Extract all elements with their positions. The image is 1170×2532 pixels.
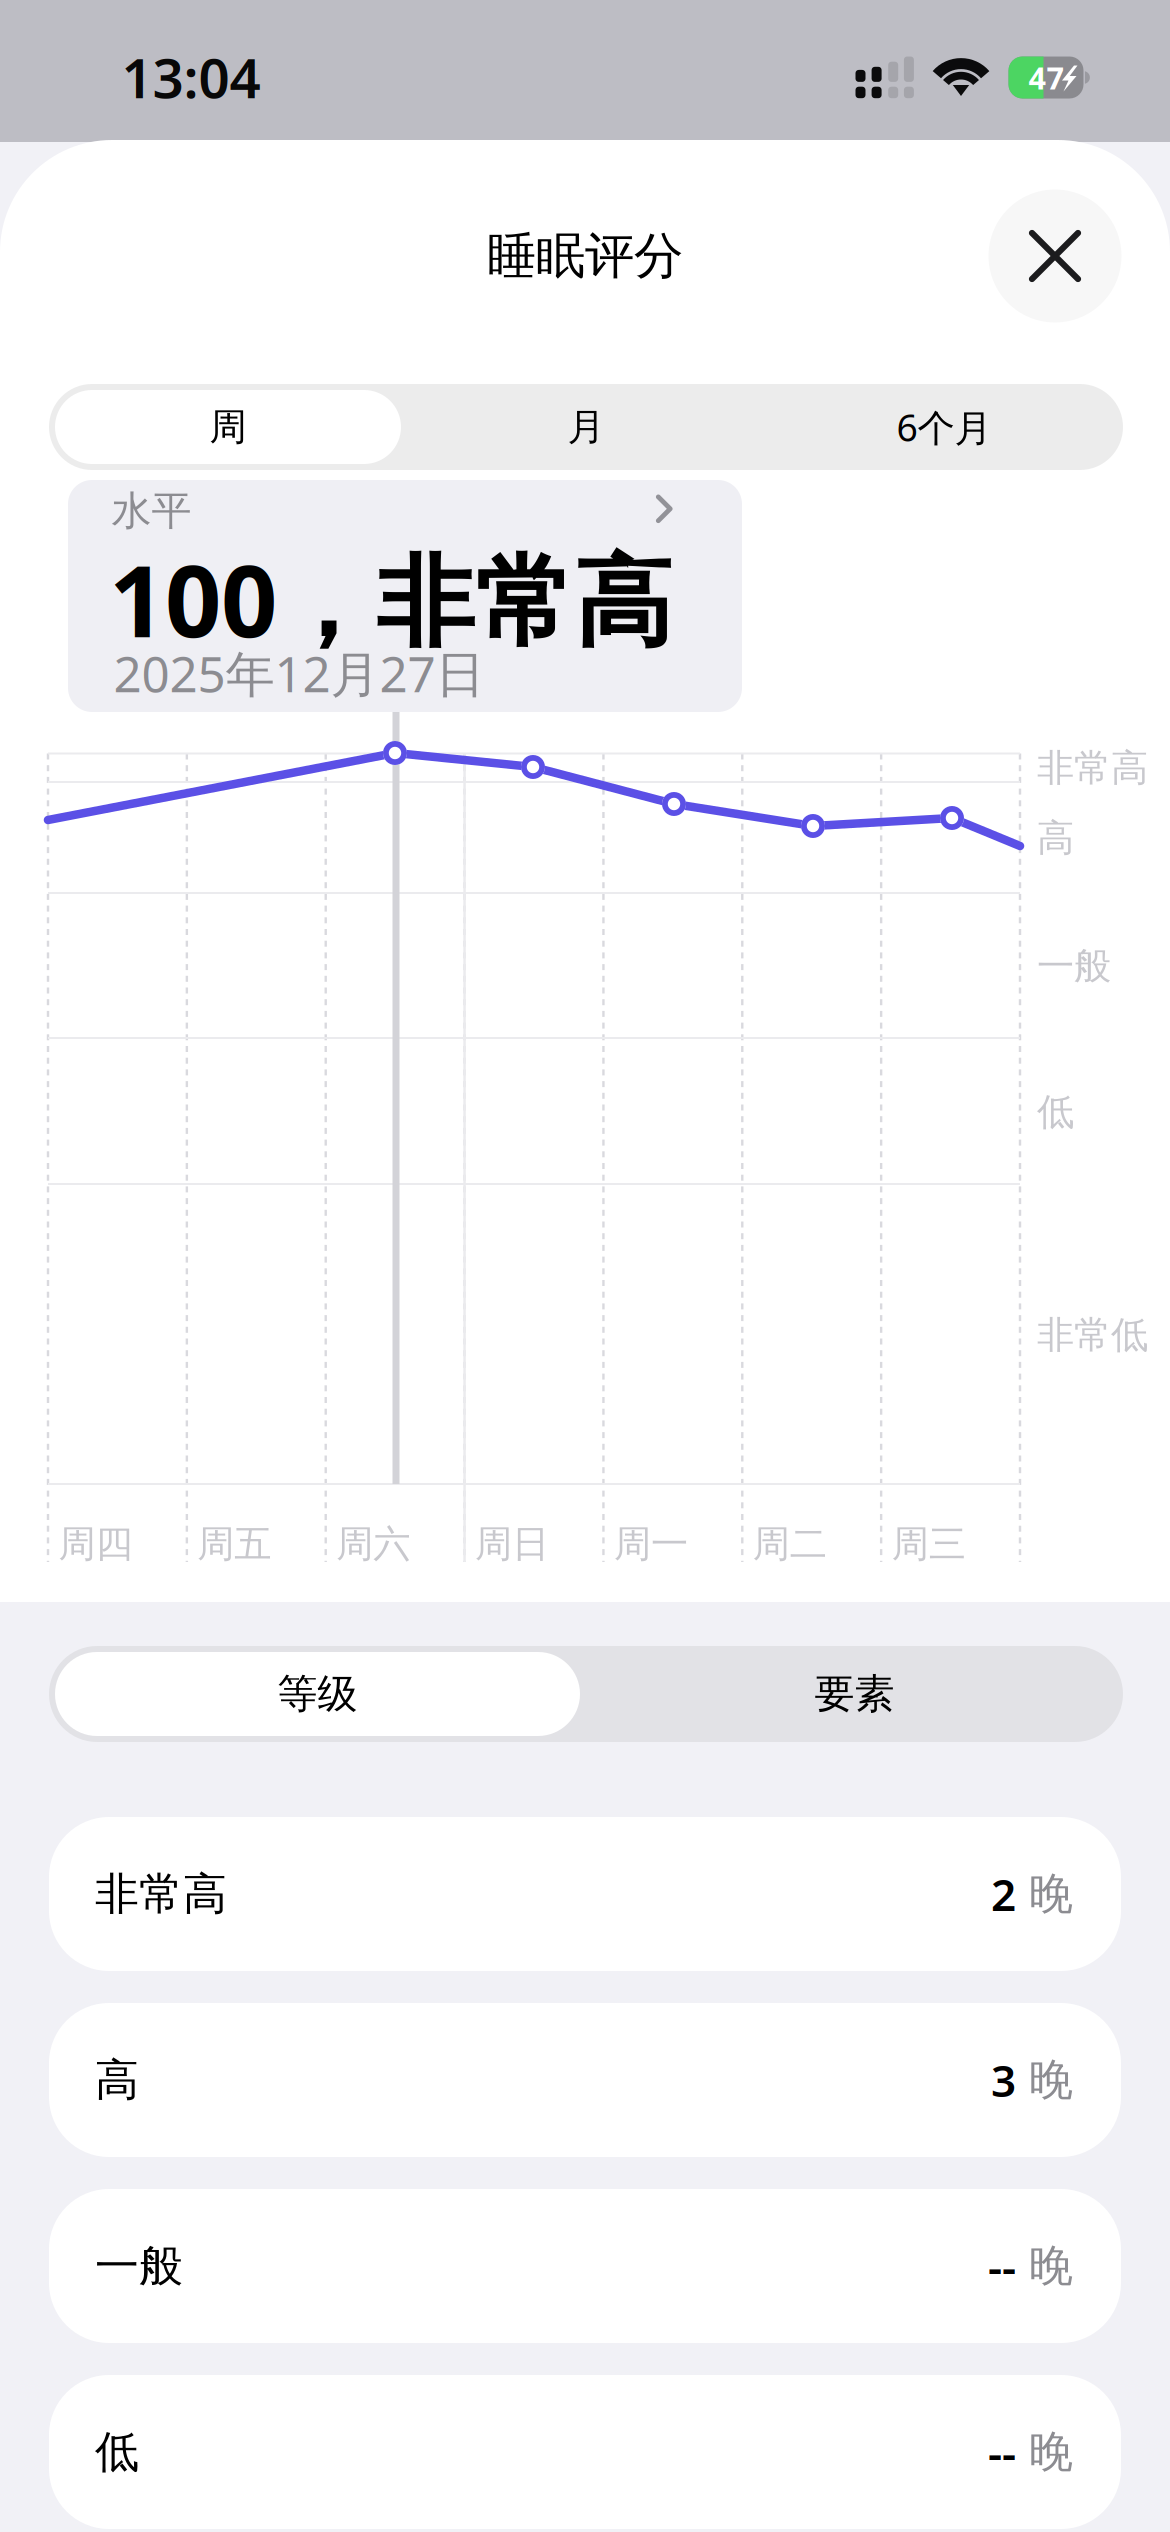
button[interactable]: 关闭 (988, 189, 1121, 322)
button[interactable]: 要素 (586, 1646, 1123, 1742)
staticText: 周四 (58, 1521, 132, 1567)
staticText: 要素 (814, 1669, 894, 1718)
staticText: 周六 (336, 1521, 410, 1567)
staticText: 2 (991, 1865, 1016, 1923)
staticText: 睡眠评分 (487, 226, 683, 286)
staticText: 周二 (753, 1521, 827, 1567)
staticText: 等级 (277, 1669, 357, 1718)
staticText: 6个月 (896, 402, 991, 452)
staticText: 周日 (475, 1521, 549, 1567)
staticText: 高 (95, 2053, 139, 2107)
staticText: 非常低 (1037, 1312, 1148, 1358)
staticText: 2025年12月27日 (113, 640, 484, 706)
button[interactable]: 月 (407, 384, 765, 470)
staticText: 周一 (614, 1521, 688, 1567)
staticText: 晚 (1016, 2425, 1073, 2479)
staticText: 低 (95, 2425, 139, 2479)
staticText: 一般 (1037, 943, 1111, 989)
button[interactable]: 高 (49, 2003, 1121, 2157)
staticText: 晚 (1016, 2239, 1073, 2293)
staticText: 100，非常高 (109, 533, 673, 664)
staticText: 水平 (111, 486, 191, 535)
staticText: -- (988, 2237, 1016, 2295)
staticText: 3 (991, 2051, 1016, 2109)
staticText: 晚 (1016, 1867, 1073, 1921)
staticText: 非常高 (1037, 745, 1148, 791)
staticText: 周五 (197, 1521, 271, 1567)
button[interactable]: 水平 (68, 480, 742, 712)
staticText: 非常高 (95, 1867, 227, 1921)
staticText: 47 (1028, 57, 1064, 98)
staticText: 晚 (1016, 2053, 1073, 2107)
staticText: 一般 (95, 2239, 183, 2293)
staticText: 周 (209, 404, 246, 450)
staticText: 月 (567, 404, 604, 450)
button[interactable]: 一般 (49, 2189, 1121, 2343)
button[interactable]: 6个月 (765, 384, 1123, 470)
staticText: 周三 (892, 1521, 966, 1567)
button[interactable]: 低 (49, 2375, 1121, 2529)
staticText: 13:04 (121, 41, 260, 113)
button[interactable]: 非常高 (49, 1817, 1121, 1971)
staticText: 低 (1037, 1089, 1074, 1135)
staticText: 高 (1037, 815, 1074, 861)
button[interactable]: 等级 (49, 1646, 586, 1742)
button[interactable]: 周 (49, 384, 407, 470)
staticText: -- (988, 2423, 1016, 2481)
